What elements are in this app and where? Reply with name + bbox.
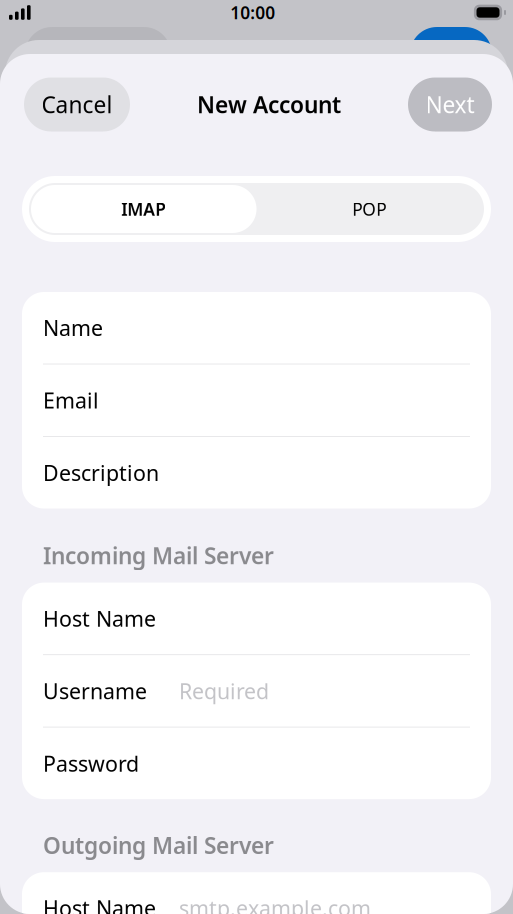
staticText: Name bbox=[43, 314, 103, 342]
staticText: Description bbox=[43, 459, 159, 487]
button[interactable]: Description bbox=[22, 437, 491, 508]
button[interactable]: Name bbox=[22, 292, 491, 363]
staticText: Cancel bbox=[41, 89, 112, 119]
staticText: Host Name bbox=[43, 894, 156, 914]
staticText: Email bbox=[43, 386, 99, 414]
staticText: Password bbox=[43, 749, 139, 777]
button[interactable]: Next bbox=[408, 77, 492, 131]
staticText: Host Name bbox=[43, 604, 156, 632]
button[interactable]: POP bbox=[256, 185, 482, 233]
button[interactable]: Host Name bbox=[22, 872, 491, 914]
staticText: Username bbox=[43, 677, 147, 705]
staticText: New Account bbox=[197, 89, 341, 119]
button[interactable]: IMAP bbox=[31, 185, 256, 233]
staticText: Incoming Mail Server bbox=[43, 540, 274, 571]
staticText: Next bbox=[425, 89, 474, 119]
button[interactable]: Password bbox=[22, 728, 491, 799]
staticText: Outgoing Mail Server bbox=[43, 830, 274, 860]
staticText: 10:00 bbox=[230, 1, 275, 24]
staticText: Required bbox=[179, 677, 269, 705]
button[interactable]: Cancel bbox=[24, 77, 130, 131]
button[interactable]: Email bbox=[22, 364, 491, 436]
button[interactable]: Host Name bbox=[22, 583, 491, 654]
staticText: smtp.example.com bbox=[179, 894, 371, 914]
button[interactable]: Username bbox=[22, 655, 491, 727]
staticText: IMAP bbox=[121, 197, 166, 220]
staticText: POP bbox=[352, 197, 386, 220]
